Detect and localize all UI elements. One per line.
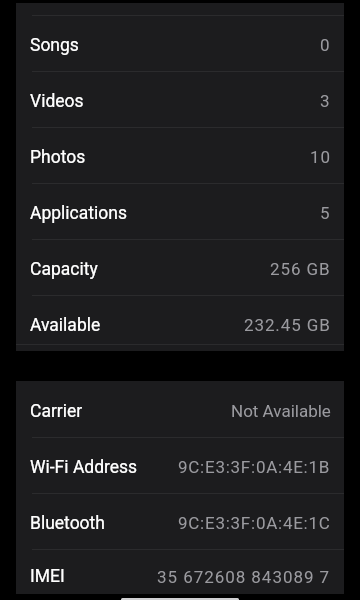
staticText: 10	[310, 147, 331, 167]
staticText: Available	[30, 315, 101, 336]
staticText: Not Available	[231, 401, 331, 421]
staticText: Videos	[30, 91, 84, 112]
staticText: 5	[320, 203, 331, 223]
button[interactable]: Songs	[16, 15, 344, 71]
button[interactable]: Applications	[16, 183, 344, 239]
staticText: Applications	[30, 203, 127, 224]
button[interactable]: Wi-Fi Address	[16, 437, 344, 493]
staticText: Capacity	[30, 259, 98, 280]
staticText: Carrier	[30, 401, 83, 422]
staticText: Bluetooth	[30, 513, 105, 534]
staticText: 35 672608 843089 7	[157, 567, 331, 587]
staticText: 3	[320, 91, 331, 111]
button[interactable]: Bluetooth	[16, 493, 344, 549]
button[interactable]: IMEI	[16, 549, 344, 600]
staticText: Wi-Fi Address	[30, 457, 138, 478]
staticText: 232.45 GB	[244, 315, 331, 335]
staticText: 9C:E3:3F:0A:4E:1C	[178, 513, 331, 533]
staticText: Songs	[30, 35, 79, 56]
staticText: IMEI	[30, 566, 65, 587]
button[interactable]: Carrier	[16, 381, 344, 437]
button[interactable]: Videos	[16, 71, 344, 127]
button[interactable]: Capacity	[16, 239, 344, 295]
staticText: 0	[320, 35, 331, 55]
button[interactable]: Available	[16, 295, 344, 351]
staticText: 256 GB	[270, 259, 331, 279]
button[interactable]: Photos	[16, 127, 344, 183]
staticText: Photos	[30, 147, 86, 168]
staticText: 9C:E3:3F:0A:4E:1B	[178, 457, 331, 477]
